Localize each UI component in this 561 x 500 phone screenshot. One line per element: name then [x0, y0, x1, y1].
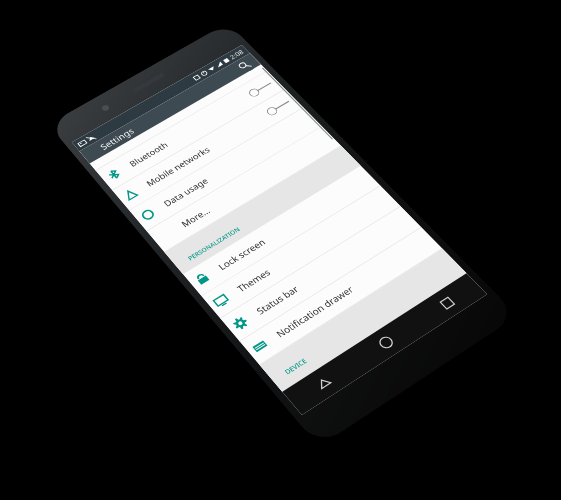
staticText: Wi-Fi: [110, 131, 135, 150]
staticText: Status bar: [254, 283, 301, 317]
staticText: Bluetooth: [127, 139, 171, 169]
button[interactable]: Search: [230, 55, 257, 76]
button[interactable]: Data usage: [129, 108, 322, 231]
button[interactable]: Mobile networks: [112, 89, 303, 210]
staticText: 2:08: [228, 48, 246, 61]
button[interactable]: Lock screen: [183, 166, 380, 296]
staticText: Themes: [234, 266, 273, 295]
button[interactable]: Wi-Fi: [79, 53, 267, 170]
staticText: Notification drawer: [273, 283, 356, 340]
staticText: Data usage: [161, 175, 211, 209]
button[interactable]: Bluetooth: [96, 71, 285, 190]
button[interactable]: Recents: [406, 273, 487, 334]
staticText: More...: [179, 205, 213, 230]
staticText: Settings: [98, 126, 136, 152]
staticText: Mobile networks: [144, 144, 213, 189]
staticText: Lock screen: [216, 236, 268, 273]
button[interactable]: Themes: [202, 186, 400, 318]
button[interactable]: Status bar: [220, 206, 421, 341]
button[interactable]: Notification drawer: [240, 227, 442, 364]
staticText: PERSONALIZATION: [186, 225, 241, 262]
button[interactable]: Home: [345, 312, 427, 374]
staticText: DEVICE: [283, 356, 308, 376]
button[interactable]: Back: [282, 351, 365, 415]
button[interactable]: More...: [147, 127, 340, 252]
